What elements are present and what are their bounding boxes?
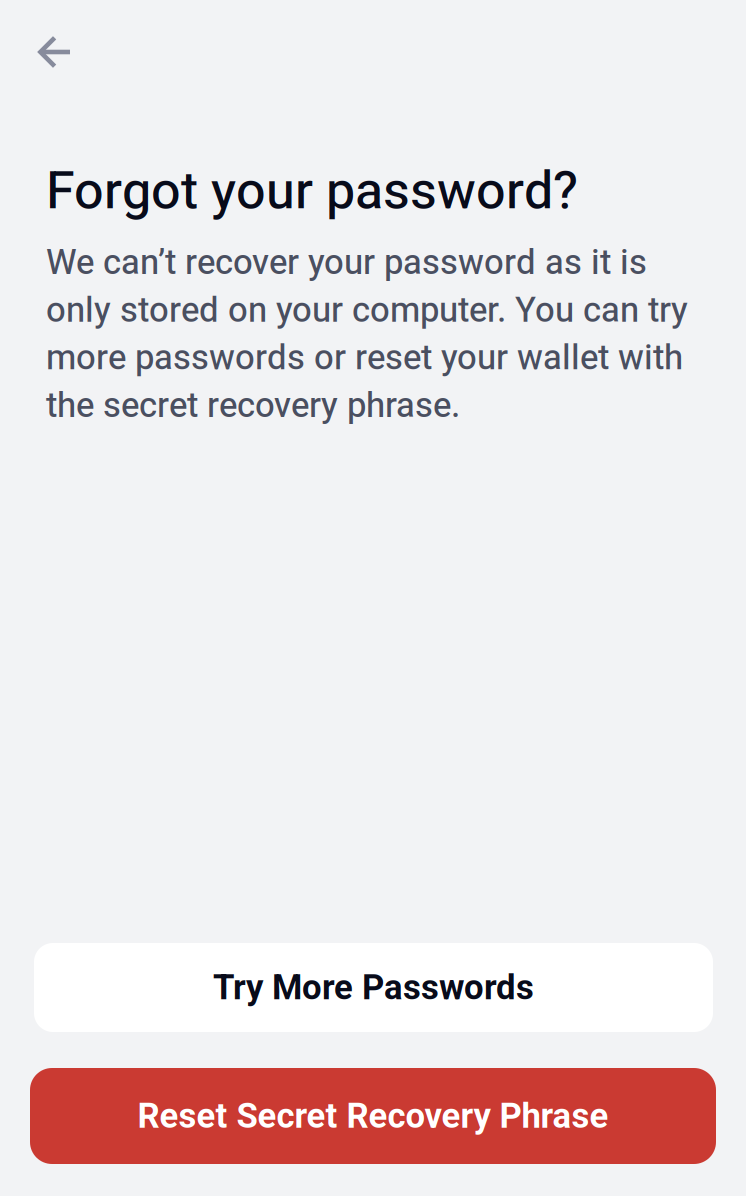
staticText: Reset Secret Recovery Phrase	[137, 1096, 608, 1136]
button[interactable]: Reset Secret Recovery Phrase	[30, 1068, 716, 1164]
staticText: We can’t recover your password as it is …	[46, 242, 688, 425]
button[interactable]: Back	[0, 0, 96, 90]
staticText: Forgot your password?	[46, 160, 578, 221]
staticText: Try More Passwords	[213, 967, 534, 1008]
button[interactable]: Try More Passwords	[34, 943, 713, 1032]
